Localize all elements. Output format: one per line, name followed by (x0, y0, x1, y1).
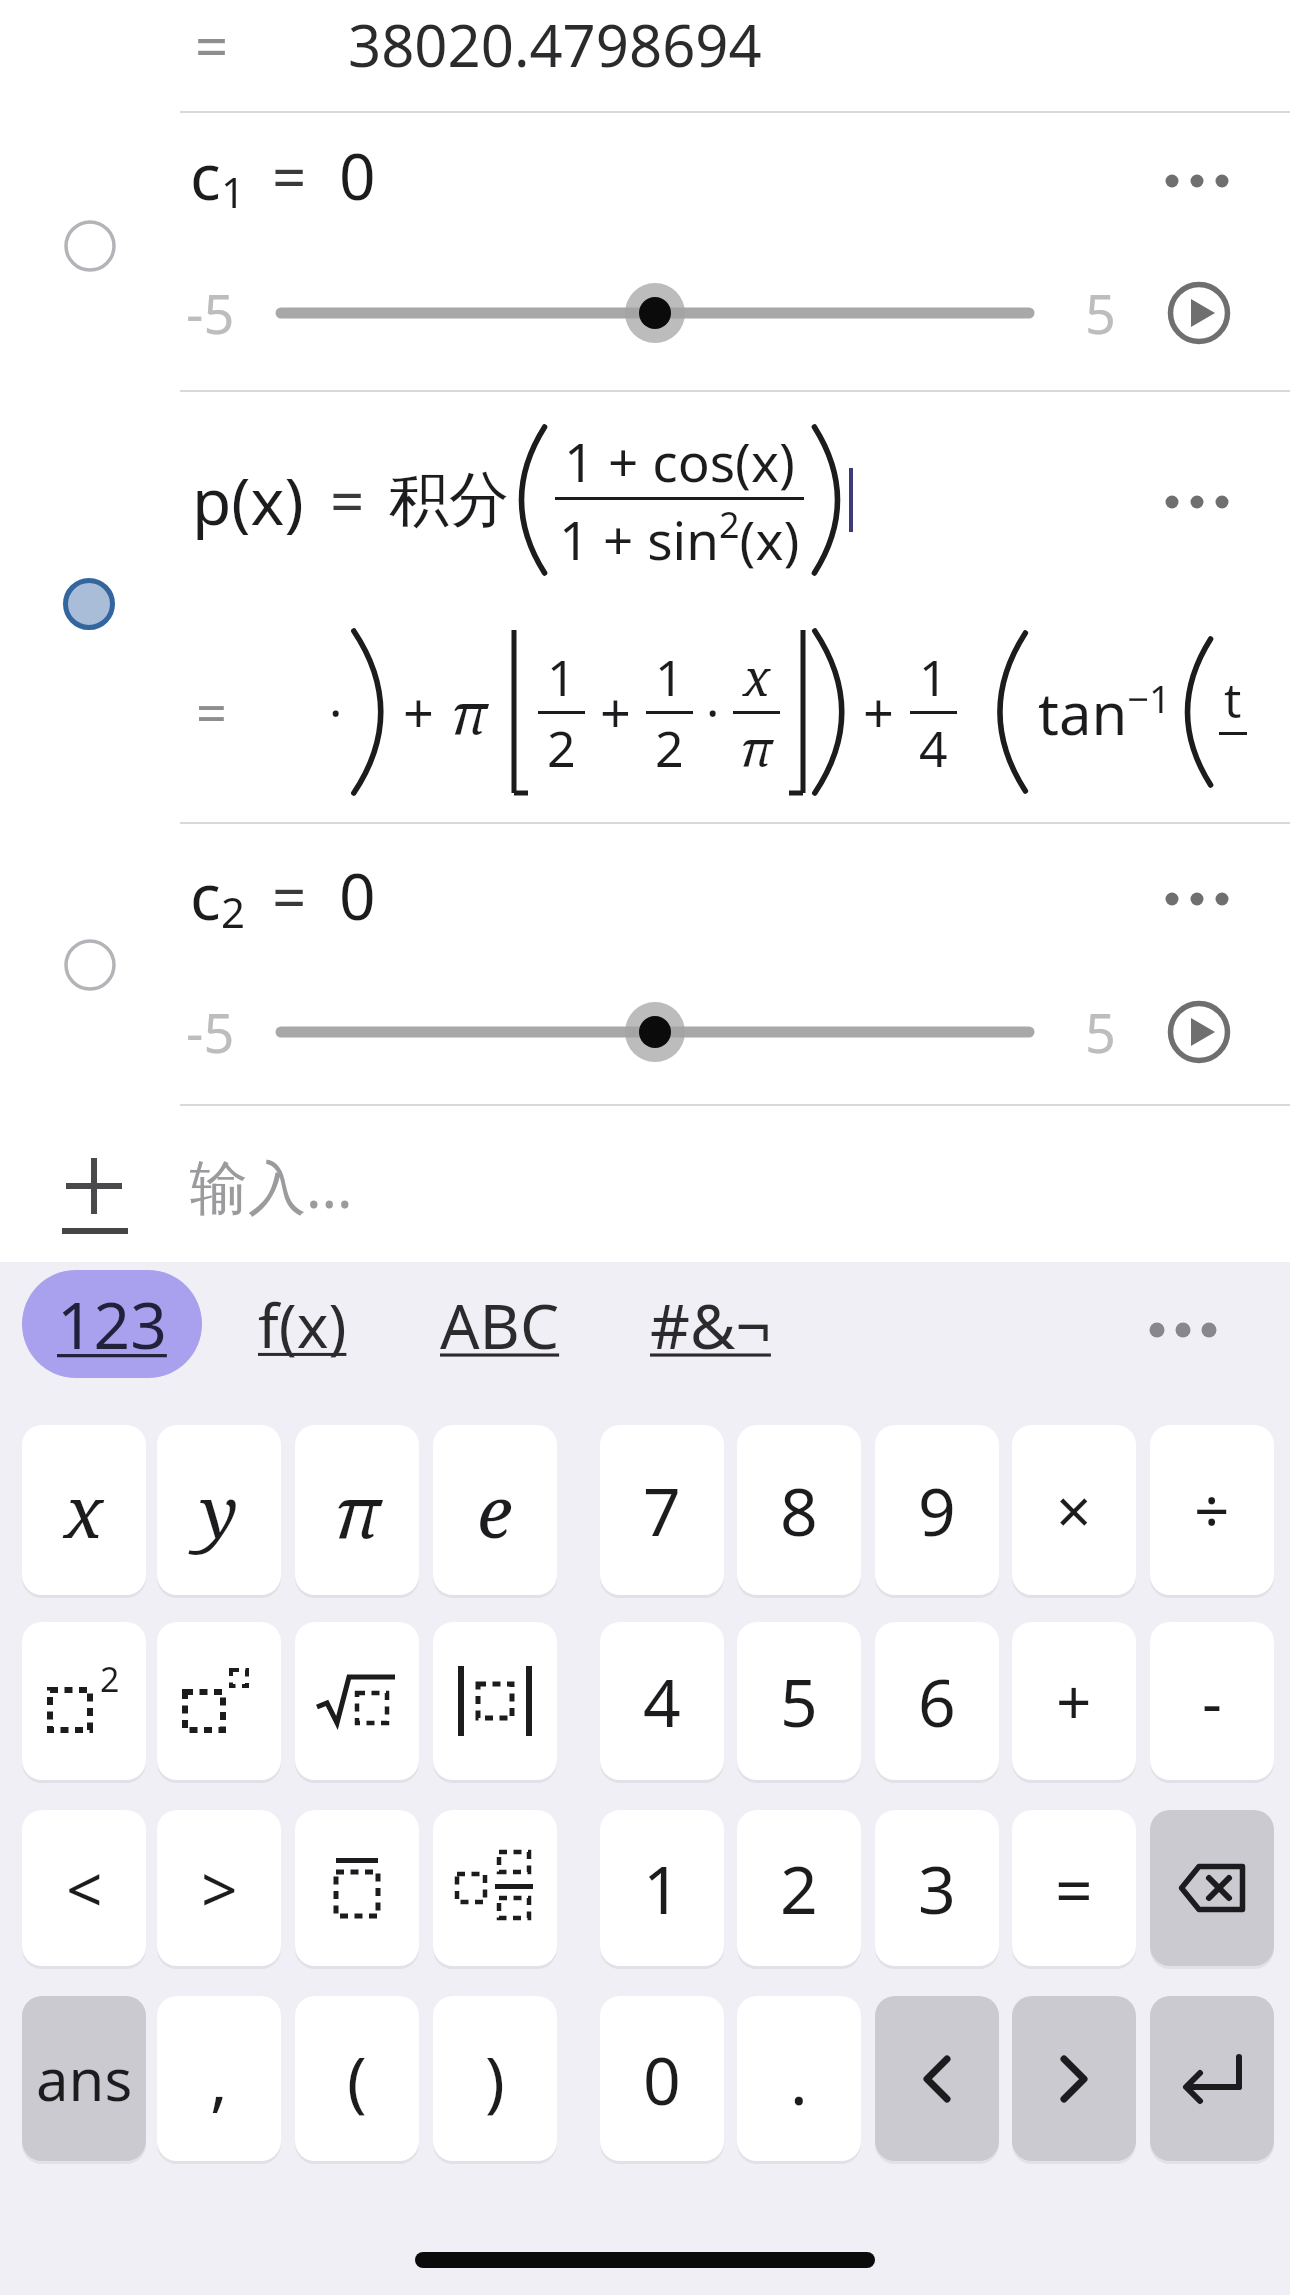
button[interactable]: 2 (22, 1622, 146, 1780)
staticText: = (195, 6, 229, 85)
staticText: 2 (221, 883, 246, 940)
button[interactable]: ( (295, 1996, 419, 2161)
button[interactable]: f(x) (240, 1282, 365, 1368)
button[interactable]: < (22, 1810, 146, 1966)
button[interactable]: 1 (600, 1810, 724, 1966)
staticText: + (403, 675, 434, 749)
button[interactable]: ) (433, 1996, 557, 2161)
button[interactable]: y (157, 1425, 281, 1595)
staticText: π (451, 674, 488, 750)
staticText: 5 (780, 1656, 818, 1746)
staticText: 2 (655, 714, 684, 782)
staticText: ABC (440, 1283, 560, 1367)
button[interactable]: 6 (875, 1622, 999, 1780)
button[interactable] (62, 937, 118, 993)
staticText: 2 (780, 1843, 818, 1933)
staticText: + (600, 675, 631, 749)
button[interactable]: 输入... (0, 1106, 1290, 1262)
staticText: x (64, 1461, 104, 1559)
staticText: ) (485, 2034, 505, 2124)
staticText: 1 (547, 643, 576, 711)
button[interactable]: 5 (737, 1622, 861, 1780)
staticText: x (743, 643, 771, 711)
staticText: , (210, 2034, 228, 2124)
button[interactable]: ABC (420, 1282, 580, 1368)
staticText: f(x) (258, 1284, 347, 1366)
button[interactable]: x (22, 1425, 146, 1595)
button[interactable]: 4 (600, 1622, 724, 1780)
button[interactable]: = (1012, 1810, 1136, 1966)
button[interactable]: ans (22, 1996, 146, 2161)
button[interactable]: × (1012, 1425, 1136, 1595)
button[interactable] (61, 576, 117, 632)
button[interactable]: 8 (737, 1425, 861, 1595)
staticText: × (1056, 1468, 1092, 1552)
staticText: p(x) (192, 457, 304, 544)
button[interactable] (1167, 281, 1231, 345)
staticText: 1 (655, 643, 684, 711)
staticText: 输入... (190, 1146, 353, 1225)
button[interactable]: 7 (600, 1425, 724, 1595)
staticText: = (272, 855, 307, 937)
button[interactable] (157, 1622, 281, 1780)
button[interactable]: 3 (875, 1810, 999, 1966)
button[interactable] (295, 1622, 419, 1780)
button[interactable]: > (157, 1810, 281, 1966)
button[interactable]: , (157, 1996, 281, 2161)
staticText: 9 (918, 1465, 956, 1555)
button[interactable]: + (1012, 1622, 1136, 1780)
staticText: ( (347, 2034, 367, 2124)
staticText: 2 (547, 714, 576, 782)
button[interactable] (295, 1810, 419, 1966)
button[interactable] (1162, 492, 1232, 512)
staticText: t (1224, 667, 1242, 732)
button[interactable] (1167, 1000, 1231, 1064)
staticText: 7 (643, 1465, 681, 1555)
button[interactable] (270, 278, 1040, 348)
staticText: y (200, 1461, 239, 1559)
staticText: · (329, 678, 343, 746)
staticText: 1 (643, 1843, 681, 1933)
staticText: c (190, 132, 221, 219)
staticText: = (196, 675, 227, 749)
staticText: 38020.4798694 (348, 5, 762, 84)
button[interactable] (1012, 1996, 1136, 2161)
staticText: π (740, 714, 773, 782)
button[interactable] (1150, 1996, 1274, 2161)
button[interactable] (270, 997, 1040, 1067)
button[interactable]: e (433, 1425, 557, 1595)
staticText: . (790, 2034, 808, 2124)
staticText: = (272, 135, 307, 217)
staticText: c (190, 852, 221, 939)
button[interactable] (1162, 171, 1232, 191)
staticText: - (1202, 1659, 1222, 1743)
button[interactable]: . (737, 1996, 861, 2161)
button[interactable] (62, 218, 118, 274)
staticText: 1 + sin2(x) (559, 500, 800, 575)
staticText: + (1056, 1659, 1092, 1743)
staticText: = (1055, 1843, 1093, 1933)
button[interactable] (1162, 889, 1232, 909)
button[interactable] (433, 1622, 557, 1780)
button[interactable]: 0 (600, 1996, 724, 2161)
button[interactable]: ÷ (1150, 1425, 1274, 1595)
button[interactable]: 123 (22, 1270, 202, 1378)
staticText: e (477, 1461, 513, 1559)
button[interactable]: 9 (875, 1425, 999, 1595)
button[interactable]: #&¬ (630, 1282, 790, 1368)
button[interactable] (875, 1996, 999, 2161)
button[interactable] (433, 1810, 557, 1966)
button[interactable] (1150, 1810, 1274, 1966)
button[interactable]: π (295, 1425, 419, 1595)
staticText: ans (36, 2039, 133, 2118)
staticText: 0 (339, 852, 376, 939)
staticText: -5 (186, 995, 235, 1069)
staticText: > (201, 1845, 238, 1932)
button[interactable]: - (1150, 1622, 1274, 1780)
staticText: #&¬ (650, 1283, 771, 1367)
staticText: 0 (643, 2034, 681, 2124)
staticText: 5 (1085, 995, 1116, 1069)
button[interactable]: 2 (737, 1810, 861, 1966)
staticText: 4 (919, 714, 948, 782)
button[interactable] (1147, 1320, 1219, 1340)
